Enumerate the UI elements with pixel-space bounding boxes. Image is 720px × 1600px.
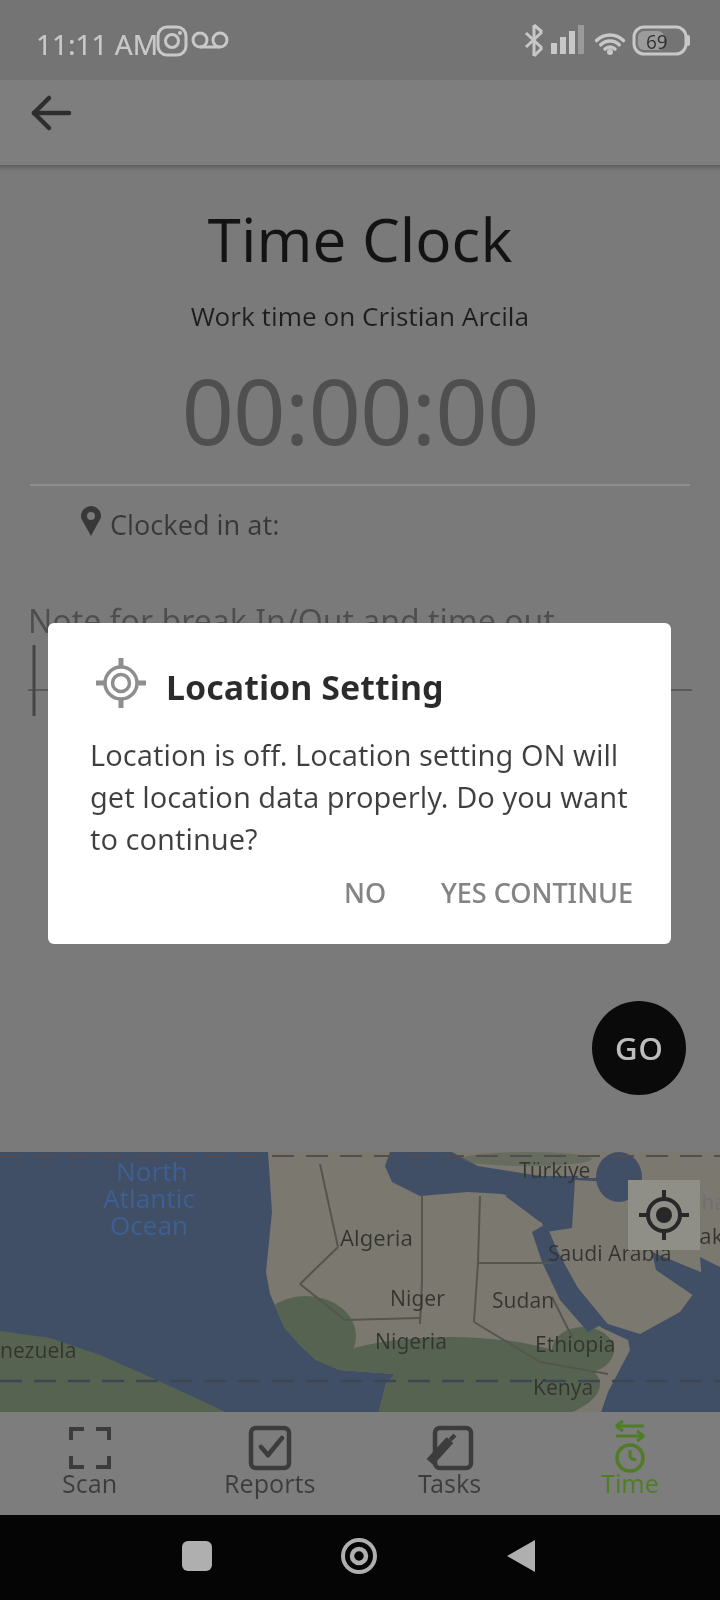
button[interactable]: Reports [180,1412,360,1515]
staticText: Note for break In/Out and time out [28,599,555,643]
button[interactable]: Time [540,1412,720,1515]
staticText: GO [615,1027,664,1069]
staticText: North [116,1153,188,1188]
button[interactable]: GO [592,1001,686,1095]
button[interactable] [329,1526,389,1586]
staticText: Reports [224,1466,316,1500]
staticText: Afghan [668,1188,720,1217]
staticText: 11:11 AM [36,25,159,63]
staticText: Sudan [492,1286,555,1315]
staticText: Scan [62,1466,118,1500]
staticText: YES CONTINUE [441,874,634,911]
staticText: Location is off. Location setting ON wil… [90,735,628,858]
staticText: 69 [646,29,668,55]
staticText: Türkiye [519,1156,591,1185]
staticText: Ocean [110,1207,189,1242]
staticText: Time [601,1466,659,1500]
button[interactable]: NO [310,863,420,921]
button[interactable] [28,90,76,138]
button[interactable] [167,1526,227,1586]
staticText: Atlantic [103,1180,195,1215]
staticText: Time Clock [0,198,720,280]
staticText: Kenya [533,1373,594,1402]
button[interactable]: Tasks [360,1412,540,1515]
staticText: Location Setting [166,664,444,710]
staticText: Niger [390,1284,445,1313]
button[interactable] [628,1180,700,1250]
staticText: Saudi Arabia [548,1239,672,1268]
button[interactable]: YES CONTINUE [432,863,642,921]
staticText: Algeria [340,1222,413,1252]
staticText: nezuela [0,1336,77,1365]
staticText: NO [344,874,387,911]
staticText: 00:00:00 [0,347,720,472]
button[interactable]: Scan [0,1412,180,1515]
staticText: Work time on Cristian Arcila [0,298,720,333]
staticText: Ethiopia [535,1330,616,1359]
staticText: Nigeria [375,1327,448,1356]
button[interactable] [491,1526,551,1586]
staticText: Tasks [418,1466,482,1500]
staticText: Clocked in at: [110,506,280,543]
staticText: Pakis [686,1220,720,1250]
